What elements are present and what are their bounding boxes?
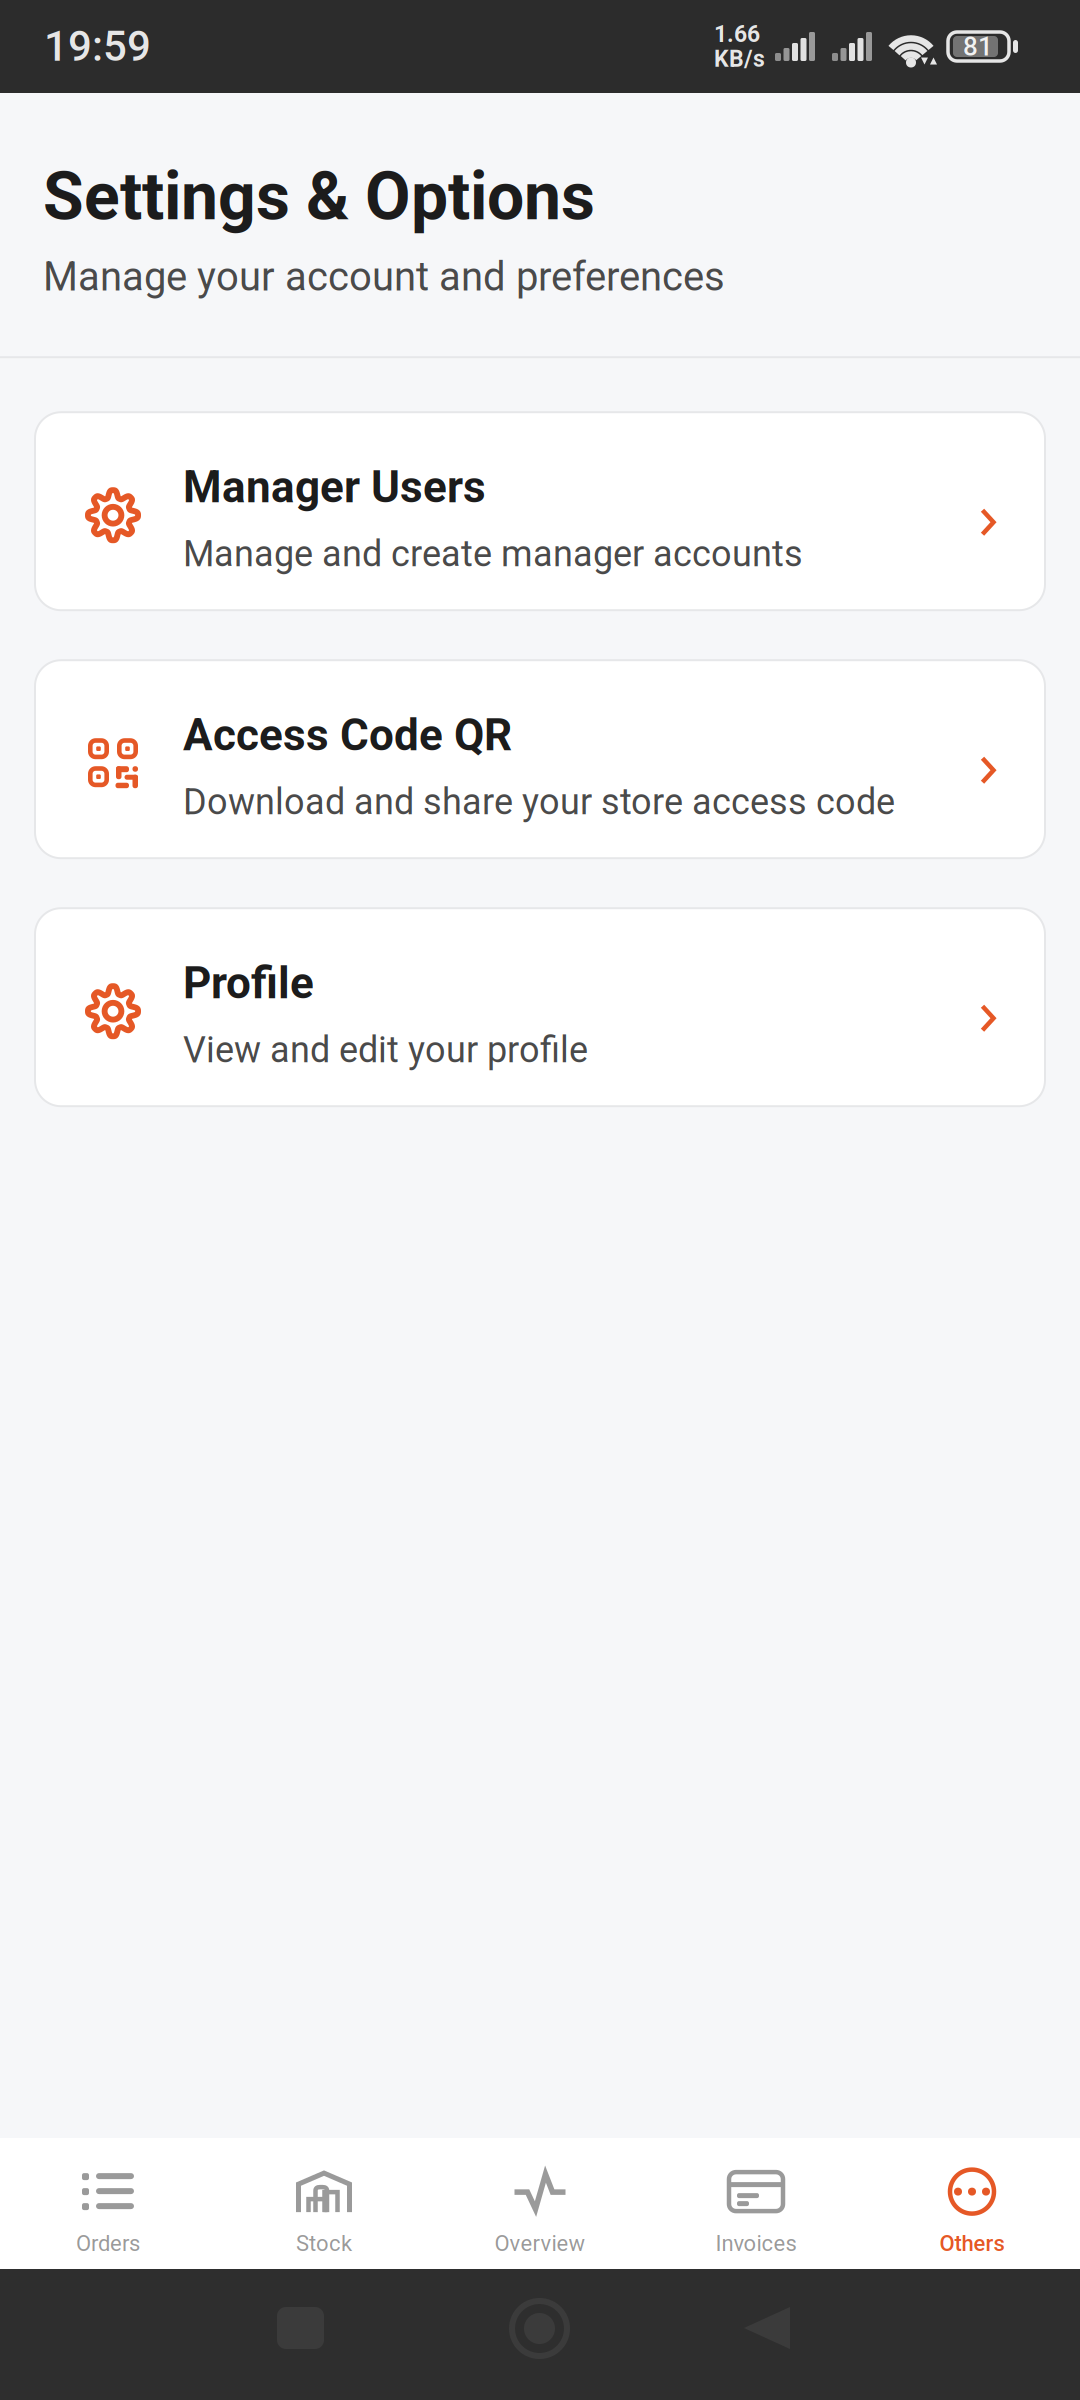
button[interactable]: Access Code QR (35, 660, 1045, 858)
staticText: Overview (494, 2231, 585, 2256)
staticText: 81 (963, 31, 993, 62)
staticText: Access Code QR (183, 709, 512, 761)
button[interactable]: Profile (35, 908, 1045, 1106)
button[interactable]: Invoices (648, 2132, 864, 2275)
staticText: KB/s (714, 45, 765, 72)
staticText: Others (939, 2231, 1004, 2256)
staticText: Invoices (715, 2231, 796, 2256)
button[interactable]: Stock (216, 2132, 432, 2275)
staticText: Manager Users (183, 461, 486, 513)
button[interactable]: Orders (0, 2132, 216, 2275)
staticText: 1.66 (714, 20, 760, 47)
button[interactable]: Manager Users (35, 412, 1045, 610)
staticText: 19:59 (44, 22, 151, 71)
staticText: Settings & Options (43, 158, 595, 235)
staticText: Download and share your store access cod… (183, 781, 895, 823)
button[interactable]: Overview (432, 2132, 648, 2275)
staticText: View and edit your profile (183, 1029, 588, 1071)
staticText: Manage your account and preferences (43, 253, 725, 300)
staticText: Profile (183, 957, 314, 1009)
button[interactable]: Others (864, 2132, 1080, 2275)
staticText: Orders (76, 2231, 140, 2256)
staticText: Manage and create manager accounts (183, 533, 803, 575)
staticText: Stock (296, 2231, 352, 2256)
